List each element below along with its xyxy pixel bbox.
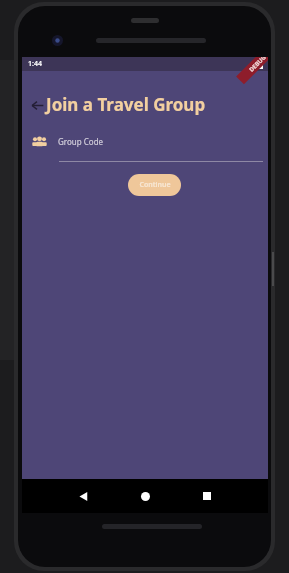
staticText: Join a Travel Group <box>46 93 206 116</box>
staticText: DEBUG <box>247 57 268 74</box>
staticText: 1:44 <box>28 59 42 69</box>
button[interactable]: Group Code <box>32 130 260 152</box>
button[interactable]: Back <box>70 483 96 509</box>
button[interactable]: Continue <box>128 174 181 196</box>
button[interactable]: Back <box>28 94 46 116</box>
button[interactable]: Recent apps <box>194 483 220 509</box>
button[interactable]: Home <box>132 483 158 509</box>
staticText: Continue <box>139 180 171 190</box>
staticText: Group Code <box>58 136 104 147</box>
